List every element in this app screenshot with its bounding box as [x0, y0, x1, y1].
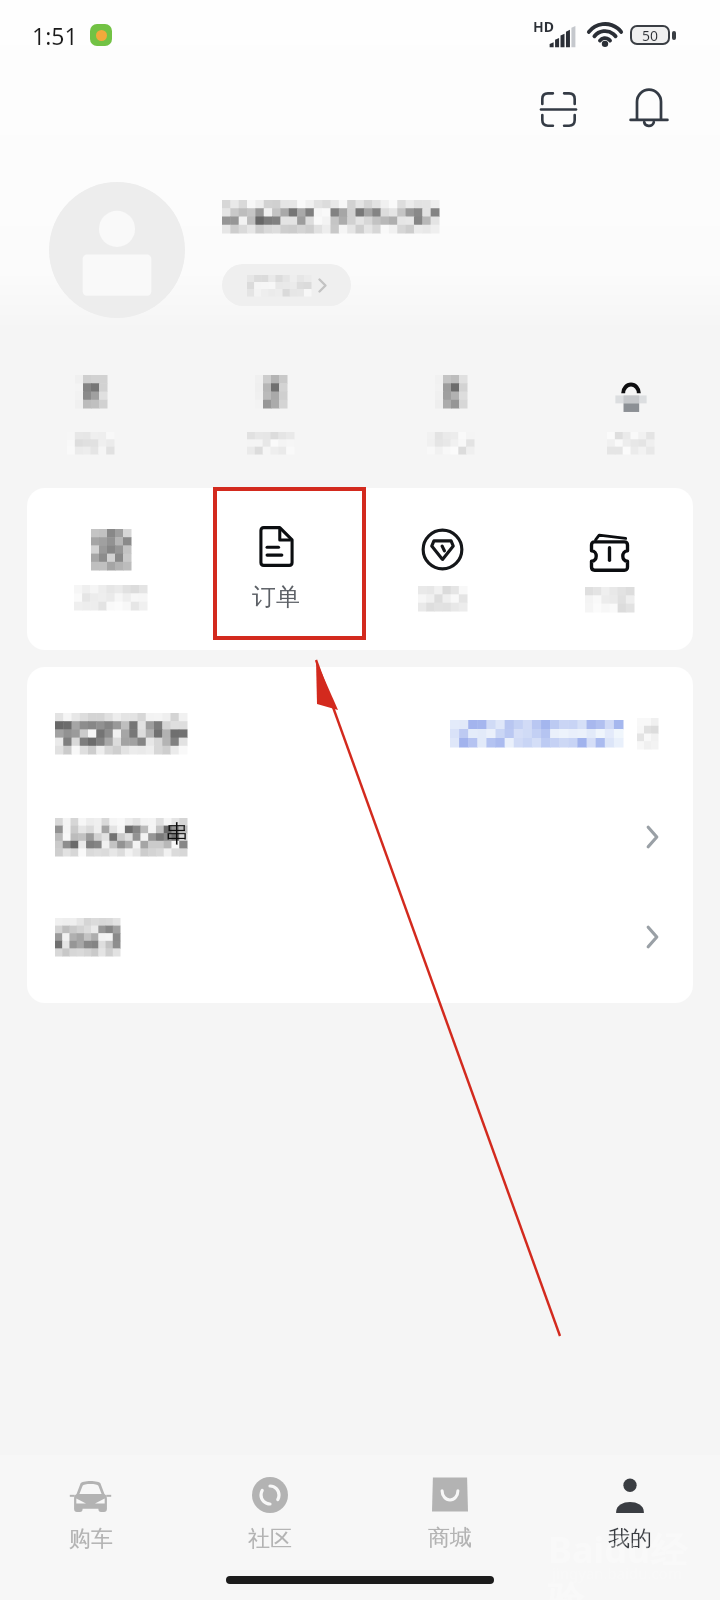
button[interactable] [49, 182, 185, 318]
button[interactable] [27, 488, 193, 650]
button[interactable]: 商城 [360, 1477, 540, 1552]
button[interactable]: Scan [524, 75, 592, 143]
staticText: 商城 [428, 1524, 472, 1552]
button[interactable] [55, 893, 665, 981]
staticText: Baidu经验 [548, 1525, 720, 1600]
button[interactable] [55, 687, 665, 780]
button[interactable]: 购车 [0, 1477, 180, 1553]
button[interactable] [360, 375, 540, 454]
staticText: 购车 [69, 1525, 113, 1553]
staticText: 50 [642, 27, 659, 42]
button[interactable]: 串 [55, 792, 665, 881]
staticText: 串 [165, 819, 189, 849]
button[interactable]: 我的 [540, 1477, 720, 1553]
staticText: HD [533, 17, 554, 36]
staticText: 订单 [252, 582, 300, 612]
staticText: 1:51 [32, 20, 78, 51]
button[interactable] [180, 375, 360, 454]
button[interactable] [359, 488, 526, 650]
button[interactable] [0, 375, 180, 454]
button[interactable]: 订单 [193, 488, 359, 650]
staticText: 我的 [608, 1525, 652, 1553]
button[interactable] [222, 264, 351, 306]
button[interactable]: Notifications [615, 75, 683, 143]
button[interactable]: 社区 [180, 1477, 360, 1553]
button[interactable] [540, 375, 720, 454]
staticText: 社区 [248, 1525, 292, 1553]
button[interactable] [526, 488, 693, 650]
